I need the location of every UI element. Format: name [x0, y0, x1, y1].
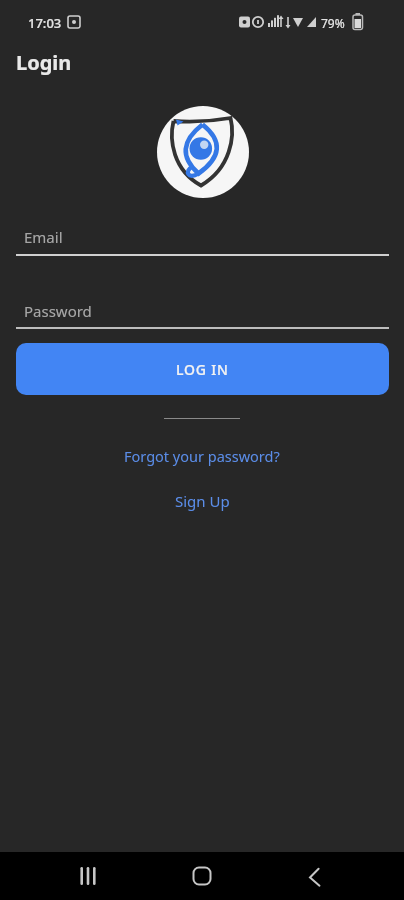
- staticText: 79%: [321, 15, 345, 31]
- button[interactable]: LOG IN: [16, 343, 389, 395]
- staticText: Sign Up: [175, 491, 230, 511]
- button[interactable]: [172, 852, 232, 900]
- staticText: 17:03: [28, 14, 62, 32]
- staticText: Login: [16, 49, 72, 76]
- staticText: LOG IN: [176, 360, 229, 379]
- button[interactable]: Forgot your password?: [118, 444, 286, 468]
- staticText: Forgot your password?: [124, 446, 280, 466]
- button[interactable]: [58, 852, 118, 900]
- button[interactable]: Sign Up: [169, 489, 236, 513]
- staticText: Password: [24, 301, 92, 321]
- button[interactable]: [284, 852, 344, 900]
- staticText: Email: [24, 227, 63, 247]
